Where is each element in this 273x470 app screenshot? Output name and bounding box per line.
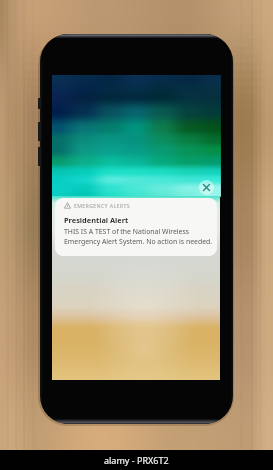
staticText: EMERGENCY ALERTS — [74, 202, 130, 209]
staticText: Emergency Alert System. No action is nee… — [64, 237, 213, 246]
button[interactable]: Close alert — [199, 180, 214, 195]
button[interactable]: EMERGENCY ALERTS — [55, 198, 217, 256]
staticText: THIS IS A TEST of the National Wireless — [64, 227, 190, 236]
staticText: alamy - PRX6T2 — [104, 454, 169, 466]
staticText: Presidential Alert — [64, 215, 129, 225]
